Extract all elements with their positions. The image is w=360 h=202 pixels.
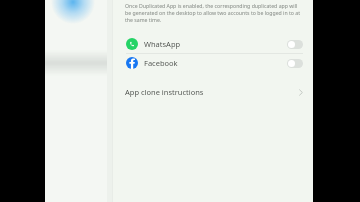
button[interactable]: Facebook xyxy=(113,54,313,72)
button[interactable]: WhatsApp xyxy=(113,35,313,53)
button[interactable]: App clone instructions xyxy=(113,84,313,100)
staticText: Once Duplicated App is enabled, the corr… xyxy=(125,2,301,23)
button[interactable]: Toggle xyxy=(287,59,303,68)
other: Open xyxy=(299,89,303,96)
staticText: Facebook xyxy=(144,58,178,68)
staticText: App clone instructions xyxy=(125,87,204,97)
staticText: WhatsApp xyxy=(144,39,181,49)
button[interactable]: Toggle xyxy=(287,40,303,49)
